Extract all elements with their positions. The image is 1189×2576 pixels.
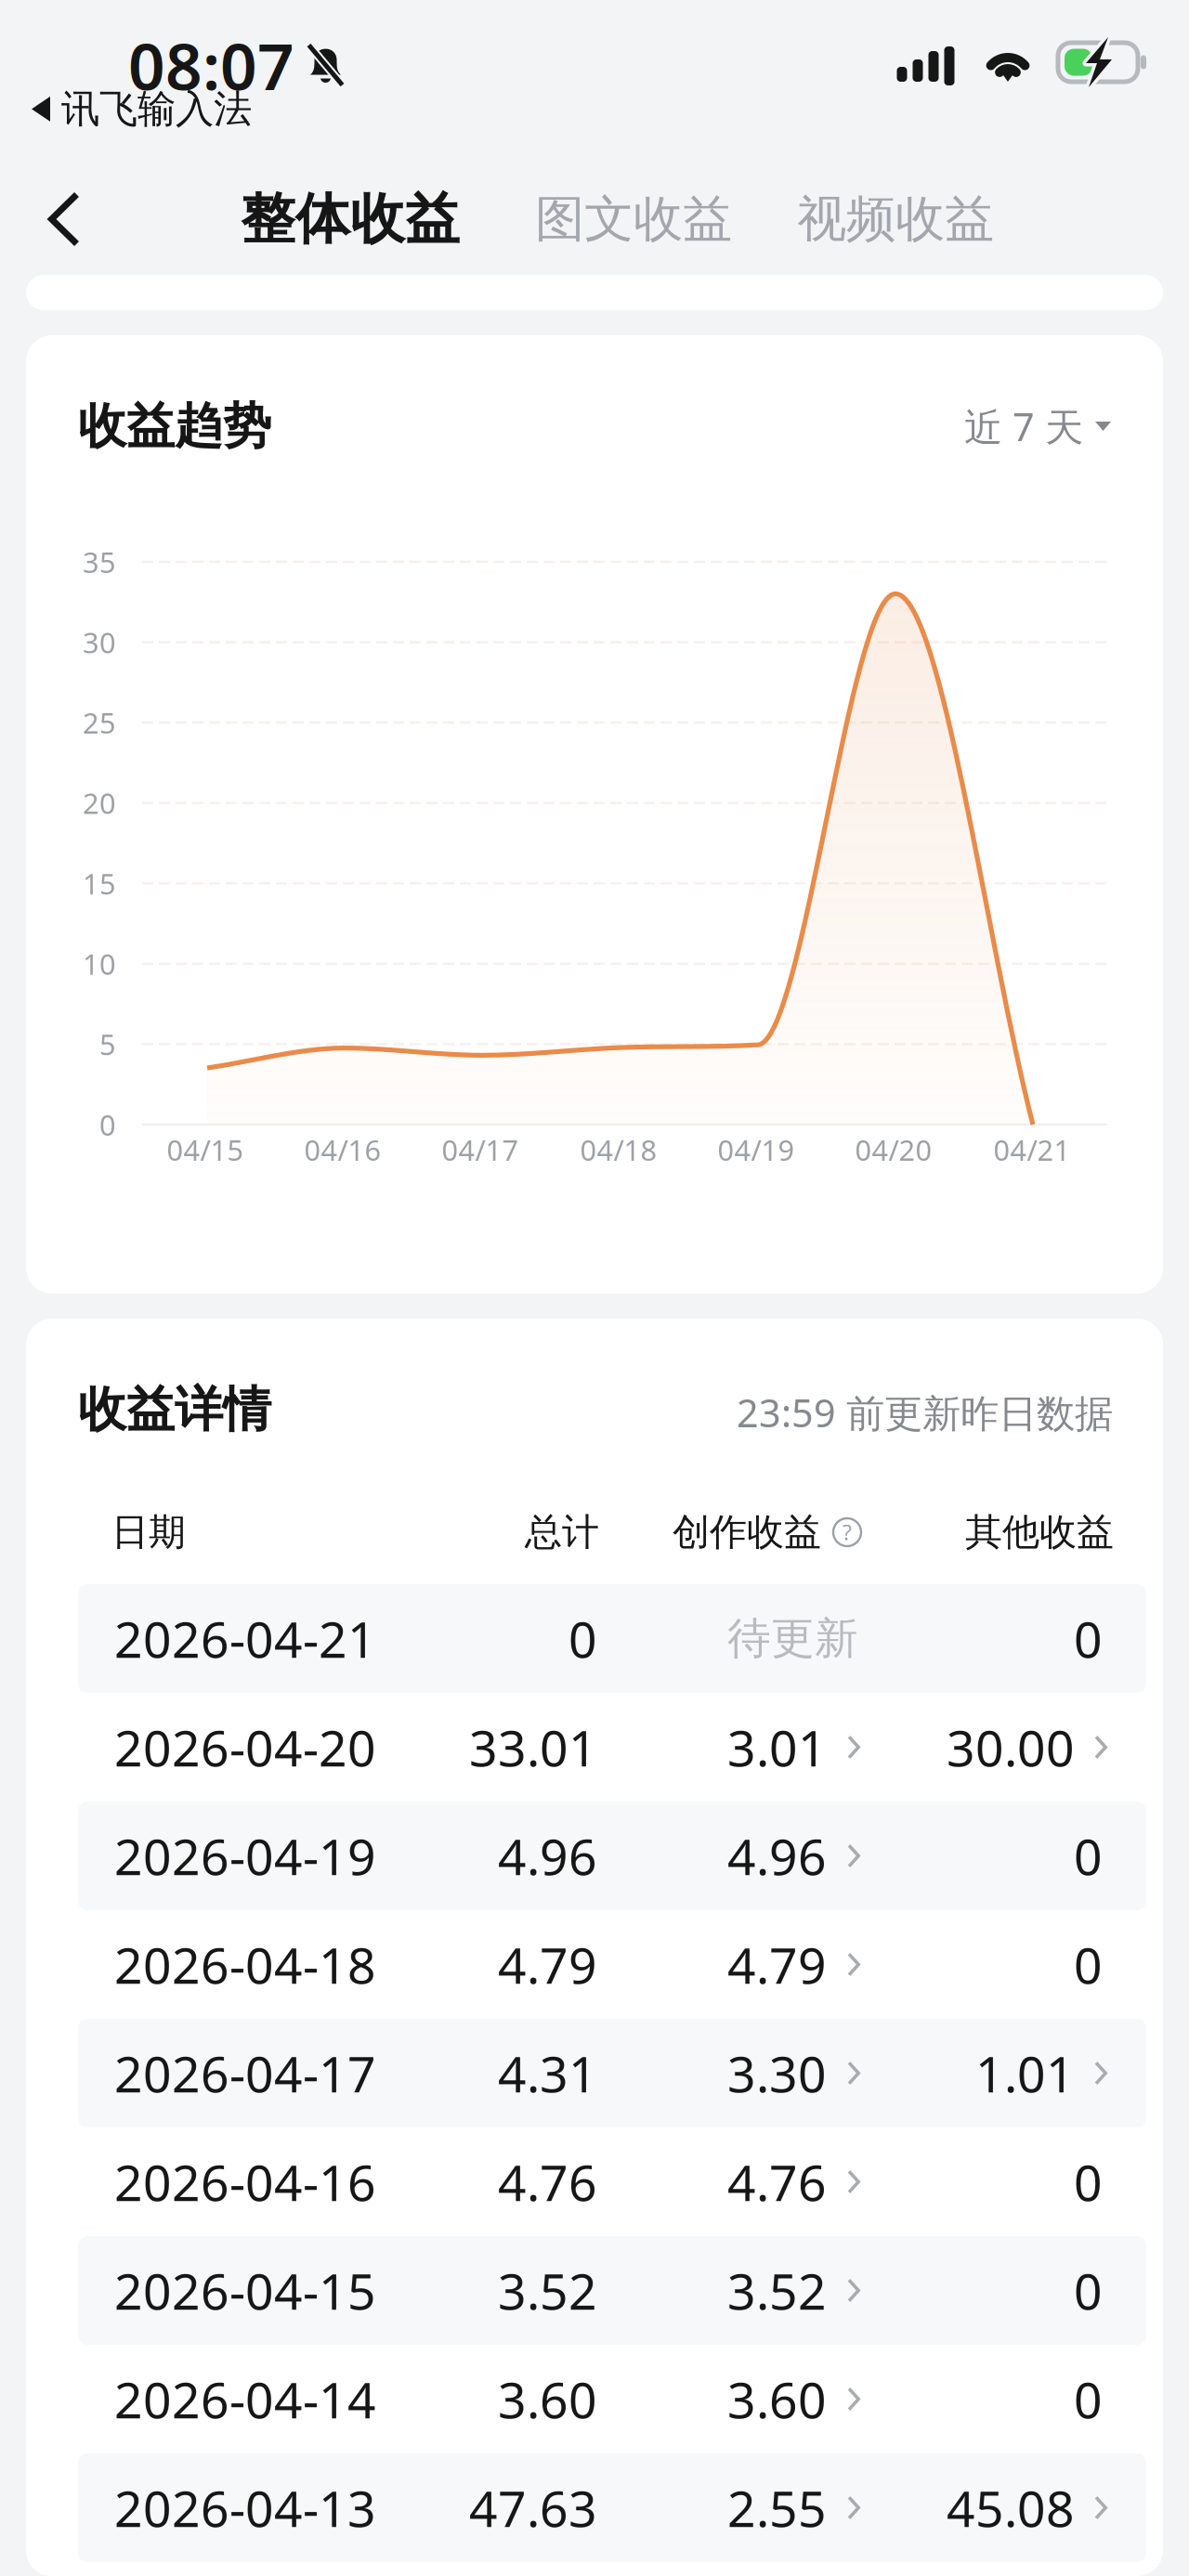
button[interactable]: 整体收益 — [241, 163, 482, 275]
staticText: 4.76 — [498, 2149, 597, 2215]
staticText: 5 — [99, 1025, 116, 1063]
button[interactable]: 2026-04-17 — [26, 2019, 1163, 2127]
staticText: 2026-04-15 — [114, 2258, 376, 2323]
button[interactable]: 2026-04-19 — [26, 1802, 1163, 1910]
staticText: 04/18 — [580, 1131, 657, 1168]
button[interactable]: Back — [13, 163, 115, 275]
staticText: 2026-04-14 — [114, 2366, 376, 2432]
staticText: 0 — [568, 1606, 597, 1671]
staticText: 讯飞输入法 — [61, 85, 252, 133]
staticText: 4.79 — [727, 1932, 827, 1997]
button[interactable]: 近 7 天 — [869, 397, 1111, 455]
staticText: 33.01 — [469, 1714, 597, 1780]
staticText: 08:07 — [128, 22, 294, 108]
button[interactable]: 视频收益 — [797, 163, 1029, 275]
button[interactable]: 2026-04-14 — [26, 2345, 1163, 2453]
staticText: 2.55 — [727, 2475, 827, 2541]
staticText: 1.01 — [975, 2040, 1075, 2106]
staticText: 0 — [99, 1106, 116, 1143]
staticText: 图文收益 — [535, 189, 732, 250]
staticText: 0 — [1074, 2149, 1103, 2215]
staticText: 总计 — [525, 1509, 599, 1555]
button[interactable]: 2026-04-18 — [26, 1910, 1163, 2019]
staticText: 4.79 — [498, 1932, 597, 1997]
staticText: 15 — [83, 864, 116, 902]
staticText: 2026-04-18 — [114, 1932, 376, 1997]
staticText: 3.30 — [727, 2040, 827, 2106]
button[interactable]: 2026-04-16 — [26, 2127, 1163, 2236]
staticText: 4.31 — [498, 2040, 597, 2106]
staticText: 10 — [83, 945, 116, 983]
staticText: 3.01 — [727, 1714, 827, 1780]
staticText: 2026-04-16 — [114, 2149, 376, 2215]
staticText: 45.08 — [947, 2475, 1075, 2541]
staticText: 视频收益 — [797, 189, 994, 250]
staticText: 04/16 — [304, 1131, 381, 1168]
staticText: 整体收益 — [241, 186, 460, 253]
staticText: 47.63 — [469, 2475, 597, 2541]
staticText: 30.00 — [947, 1714, 1075, 1780]
staticText: 35 — [83, 543, 116, 581]
staticText: 其他收益 — [965, 1509, 1114, 1555]
staticText: 3.52 — [498, 2258, 597, 2323]
staticText: ? — [843, 1518, 852, 1546]
staticText: 04/19 — [718, 1131, 795, 1168]
staticText: 3.52 — [727, 2258, 827, 2323]
staticText: 4.96 — [498, 1823, 597, 1889]
button[interactable]: 2026-04-15 — [26, 2236, 1163, 2345]
staticText: 日期 — [111, 1509, 186, 1555]
staticText: 04/20 — [855, 1131, 932, 1168]
button[interactable]: 2026-04-21 — [26, 1584, 1163, 1693]
staticText: 2026-04-20 — [114, 1714, 376, 1780]
staticText: 30 — [83, 623, 116, 661]
staticText: 04/21 — [993, 1131, 1071, 1168]
staticText: 23:59 前更新昨日数据 — [737, 1387, 1113, 1438]
button[interactable]: 2026-04-13 — [26, 2453, 1163, 2562]
staticText: 0 — [1074, 2366, 1103, 2432]
staticText: 待更新 — [727, 1612, 858, 1665]
staticText: 2026-04-21 — [114, 1606, 376, 1671]
staticText: 20 — [83, 784, 116, 822]
staticText: 0 — [1074, 2258, 1103, 2323]
staticText: 0 — [1074, 1932, 1103, 1997]
staticText: 0 — [1074, 1823, 1103, 1889]
staticText: 近 7 天 — [964, 401, 1083, 452]
staticText: 2026-04-13 — [114, 2475, 376, 2541]
staticText: 收益详情 — [78, 1380, 271, 1439]
staticText: 2026-04-17 — [114, 2040, 376, 2106]
button[interactable]: 图文收益 — [535, 163, 767, 275]
staticText: 04/17 — [442, 1131, 519, 1168]
staticText: 25 — [83, 704, 116, 742]
staticText: 3.60 — [498, 2366, 597, 2432]
staticText: 创作收益 — [673, 1509, 821, 1555]
button[interactable]: 2026-04-20 — [26, 1693, 1163, 1802]
staticText: 3.60 — [727, 2366, 827, 2432]
staticText: 0 — [1074, 1606, 1103, 1671]
staticText: 2026-04-19 — [114, 1823, 376, 1889]
staticText: 收益趋势 — [78, 397, 271, 456]
staticText: 4.96 — [727, 1823, 827, 1889]
staticText: 04/15 — [167, 1131, 244, 1168]
staticText: 4.76 — [727, 2149, 827, 2215]
